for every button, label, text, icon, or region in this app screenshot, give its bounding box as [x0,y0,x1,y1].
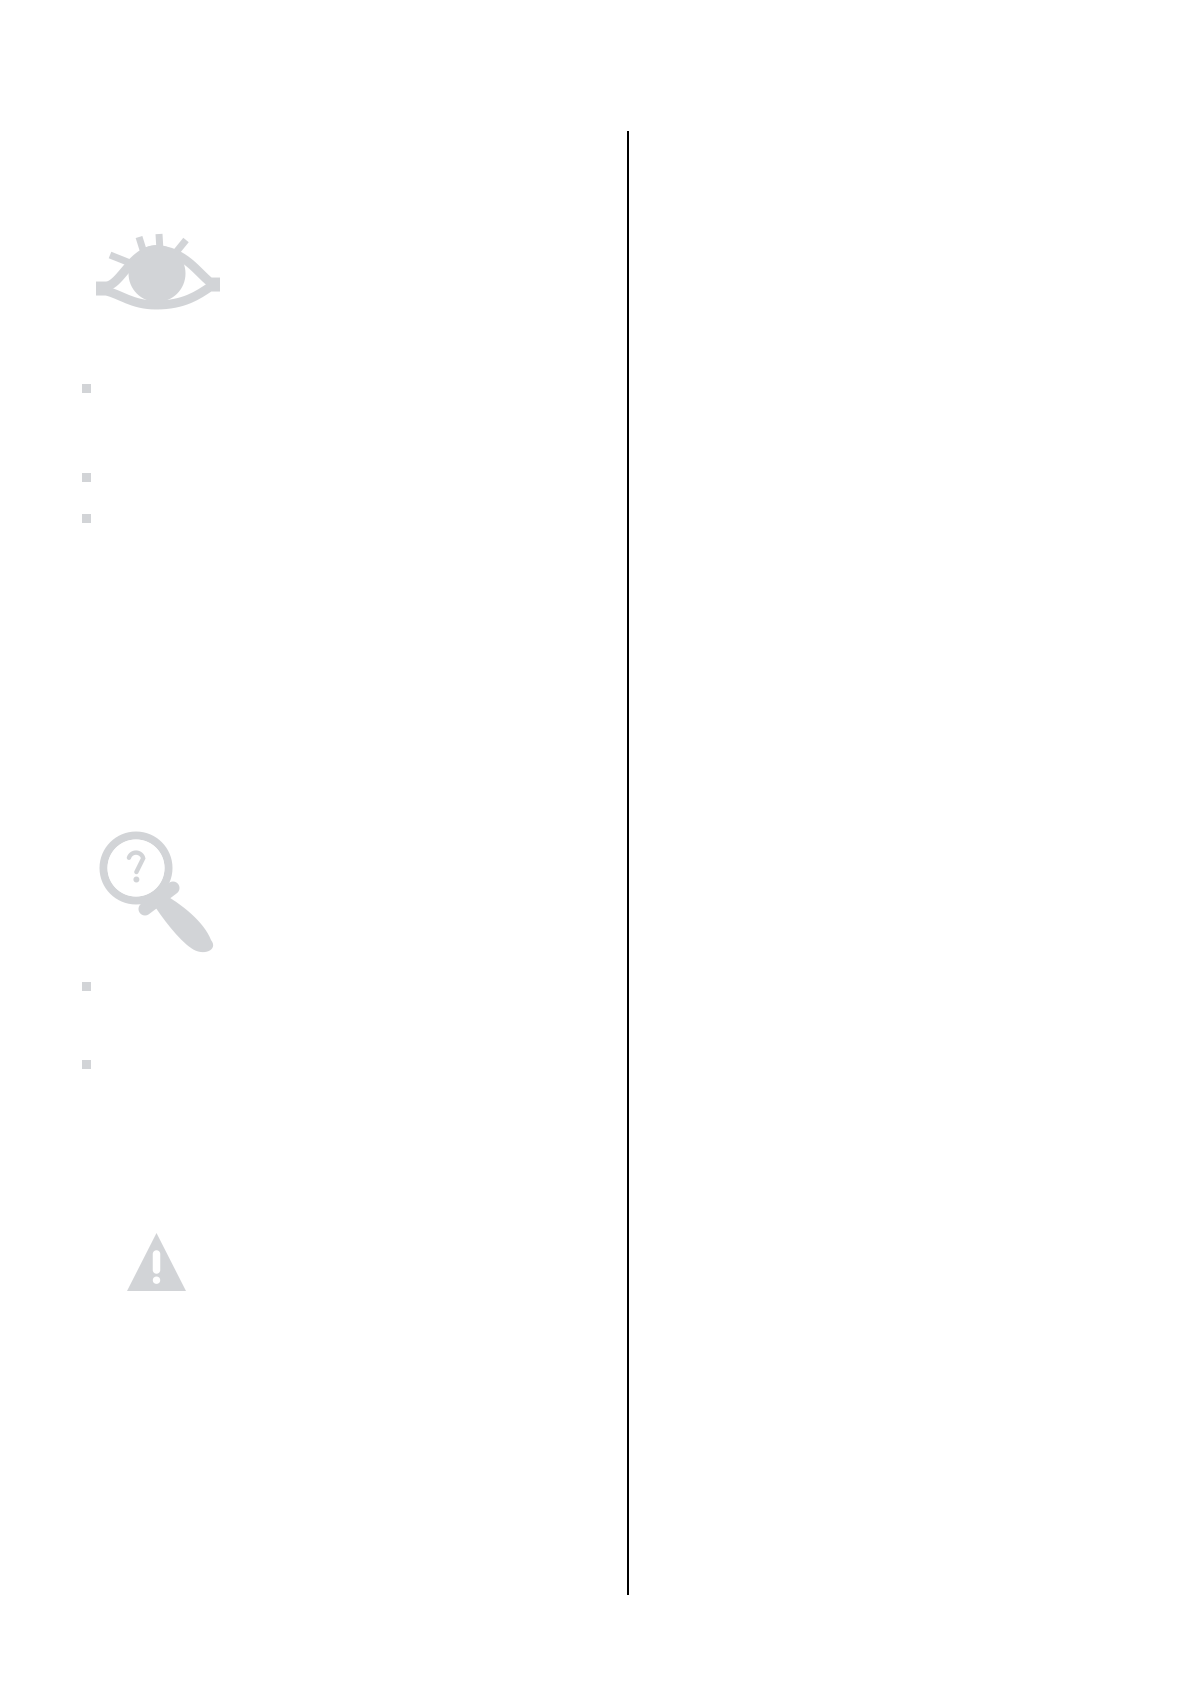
staticText: The title of the document you are readin… [110,510,788,556]
staticText: Page content you explicitly share [110,469,646,515]
staticText: You can turn it off in Settings at any t… [110,1056,780,1102]
staticText: Only the information listed below ever l… [110,380,1030,426]
staticText: Review the details above before you cont… [127,1344,875,1390]
staticText: This sheet appears the first time a page… [110,978,931,1024]
staticText: Why am I seeing this? [96,940,559,1000]
